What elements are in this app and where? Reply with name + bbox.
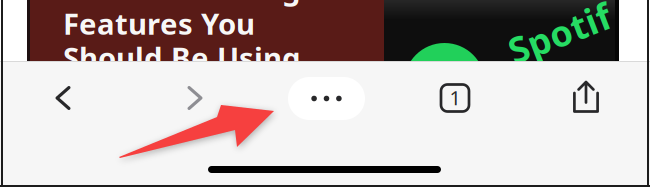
button[interactable]: Back — [21, 73, 105, 123]
button[interactable]: Page menu — [288, 77, 365, 120]
button[interactable]: Tabs — [413, 73, 497, 123]
staticText: Should Be Using — [63, 38, 301, 77]
staticText: Spotif — [506, 9, 613, 57]
staticText: Features You — [63, 4, 255, 43]
staticText: 1 — [449, 84, 460, 111]
button[interactable]: Share — [544, 72, 628, 122]
button[interactable]: Forward — [153, 73, 237, 123]
staticText: Should Be Using — [63, 0, 301, 8]
